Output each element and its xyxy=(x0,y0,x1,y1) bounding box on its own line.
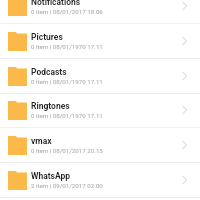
staticText: vmax xyxy=(31,136,52,146)
staticText: 0 item | 08/01/2017 20.15 xyxy=(31,147,103,154)
button[interactable]: Folder xyxy=(0,24,200,59)
other: Open xyxy=(179,0,191,12)
other: Folder xyxy=(8,136,27,155)
button[interactable]: Folder xyxy=(0,59,200,94)
other: Folder xyxy=(8,32,27,51)
staticText: 0 item | 08/01/1970 17.11 xyxy=(31,78,103,85)
staticText: Notifications xyxy=(31,0,81,7)
other: Folder xyxy=(8,171,27,190)
staticText: WhatsApp xyxy=(31,171,71,181)
staticText: 0 item | 08/01/1970 17.11 xyxy=(31,112,103,119)
staticText: 0 item | 08/01/2017 18.06 xyxy=(31,8,103,15)
staticText: Podcasts xyxy=(31,67,67,77)
other: Open xyxy=(179,70,191,82)
other: Folder xyxy=(8,101,27,120)
staticText: Ringtones xyxy=(31,101,70,111)
button[interactable]: Folder xyxy=(0,163,200,198)
staticText: 0 item | 08/01/1970 17.11 xyxy=(31,43,103,50)
staticText: 2 item | 09/01/2017 02.00 xyxy=(31,182,103,189)
other: Open xyxy=(179,174,191,186)
other: Open xyxy=(179,35,191,47)
button[interactable]: Folder xyxy=(0,93,200,128)
staticText: Pictures xyxy=(31,32,63,42)
button[interactable]: Folder xyxy=(0,128,200,163)
other: Folder xyxy=(8,67,27,86)
other: Open xyxy=(179,104,191,116)
button[interactable]: Folder xyxy=(0,0,200,24)
other: Open xyxy=(179,139,191,151)
